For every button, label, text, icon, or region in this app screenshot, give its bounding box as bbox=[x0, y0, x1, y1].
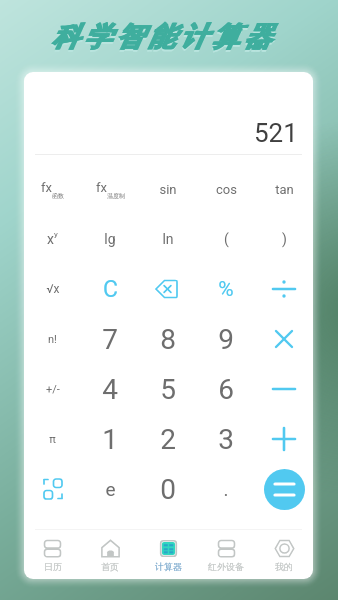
staticText: 科学智能计算器 bbox=[49, 20, 273, 54]
button[interactable]: cos bbox=[197, 164, 255, 214]
button[interactable]: 8 bbox=[139, 314, 197, 364]
staticText: 1 bbox=[102, 423, 118, 456]
button[interactable]: +/- bbox=[24, 364, 81, 414]
button[interactable]: 计算器 bbox=[139, 530, 197, 579]
staticText: n! bbox=[48, 333, 57, 346]
staticText: 科学智能计算器 bbox=[49, 22, 273, 56]
staticText: 红外设备 bbox=[208, 561, 244, 572]
button[interactable]: C bbox=[81, 264, 139, 314]
button[interactable]: fx bbox=[81, 164, 139, 214]
button[interactable]: 首页 bbox=[81, 530, 139, 579]
staticText: 6 bbox=[218, 373, 234, 406]
staticText: 521 bbox=[254, 118, 298, 148]
staticText: 3 bbox=[218, 423, 234, 456]
button[interactable]: Unit convert bbox=[24, 464, 81, 514]
button[interactable]: 5 bbox=[139, 364, 197, 414]
button[interactable]: Plus bbox=[255, 414, 313, 464]
staticText: 计算器 bbox=[155, 561, 182, 572]
staticText: sin bbox=[159, 182, 177, 197]
button[interactable]: 4 bbox=[81, 364, 139, 414]
button[interactable]: Backspace bbox=[139, 264, 197, 314]
staticText: ln bbox=[162, 231, 174, 247]
staticText: 日历 bbox=[44, 561, 62, 572]
staticText: ) bbox=[282, 231, 287, 247]
button[interactable]: Divide bbox=[255, 264, 313, 314]
staticText: C bbox=[103, 276, 118, 303]
button[interactable]: . bbox=[197, 464, 255, 514]
staticText: 8 bbox=[160, 323, 176, 356]
button[interactable]: ln bbox=[139, 214, 197, 264]
staticText: 温度制 bbox=[107, 192, 125, 200]
staticText: 科学智能计算器 bbox=[50, 20, 274, 54]
button[interactable]: x bbox=[24, 214, 81, 264]
button[interactable]: ( bbox=[197, 214, 255, 264]
staticText: 4 bbox=[102, 373, 118, 406]
staticText: fx bbox=[41, 180, 52, 195]
button[interactable]: e bbox=[81, 464, 139, 514]
button[interactable]: Equals bbox=[255, 464, 313, 514]
button[interactable]: 6 bbox=[197, 364, 255, 414]
button[interactable]: 红外设备 bbox=[197, 530, 255, 579]
button[interactable]: fx bbox=[24, 164, 81, 214]
staticText: ( bbox=[224, 231, 229, 247]
button[interactable]: n! bbox=[24, 314, 81, 364]
button[interactable]: 日历 bbox=[24, 530, 81, 579]
staticText: 我的 bbox=[275, 561, 293, 572]
staticText: tan bbox=[275, 182, 294, 197]
button[interactable]: lg bbox=[81, 214, 139, 264]
button[interactable]: Minus bbox=[255, 364, 313, 414]
button[interactable]: 我的 bbox=[255, 530, 313, 579]
staticText: +/- bbox=[46, 383, 60, 396]
button[interactable]: tan bbox=[255, 164, 313, 214]
staticText: cos bbox=[216, 182, 237, 197]
staticText: 2 bbox=[160, 423, 176, 456]
button[interactable]: 3 bbox=[197, 414, 255, 464]
button[interactable]: ) bbox=[255, 214, 313, 264]
staticText: fx bbox=[96, 180, 107, 195]
staticText: 0 bbox=[160, 473, 176, 506]
staticText: 首页 bbox=[101, 561, 119, 572]
staticText: lg bbox=[104, 231, 116, 247]
button[interactable]: 0 bbox=[139, 464, 197, 514]
button[interactable]: √x bbox=[24, 264, 81, 314]
button[interactable]: Multiply bbox=[255, 314, 313, 364]
staticText: √x bbox=[46, 282, 60, 296]
staticText: y bbox=[54, 230, 58, 239]
button[interactable]: 1 bbox=[81, 414, 139, 464]
staticText: π bbox=[49, 433, 56, 446]
staticText: 7 bbox=[102, 323, 118, 356]
staticText: 5 bbox=[160, 373, 176, 406]
staticText: 函数 bbox=[52, 192, 64, 200]
staticText: % bbox=[218, 277, 234, 302]
button[interactable]: % bbox=[197, 264, 255, 314]
staticText: 9 bbox=[218, 323, 234, 356]
button[interactable]: 2 bbox=[139, 414, 197, 464]
staticText: x bbox=[47, 231, 54, 247]
button[interactable]: sin bbox=[139, 164, 197, 214]
button[interactable]: 9 bbox=[197, 314, 255, 364]
staticText: e bbox=[105, 478, 116, 500]
button[interactable]: π bbox=[24, 414, 81, 464]
button[interactable]: 7 bbox=[81, 314, 139, 364]
staticText: . bbox=[223, 478, 229, 500]
